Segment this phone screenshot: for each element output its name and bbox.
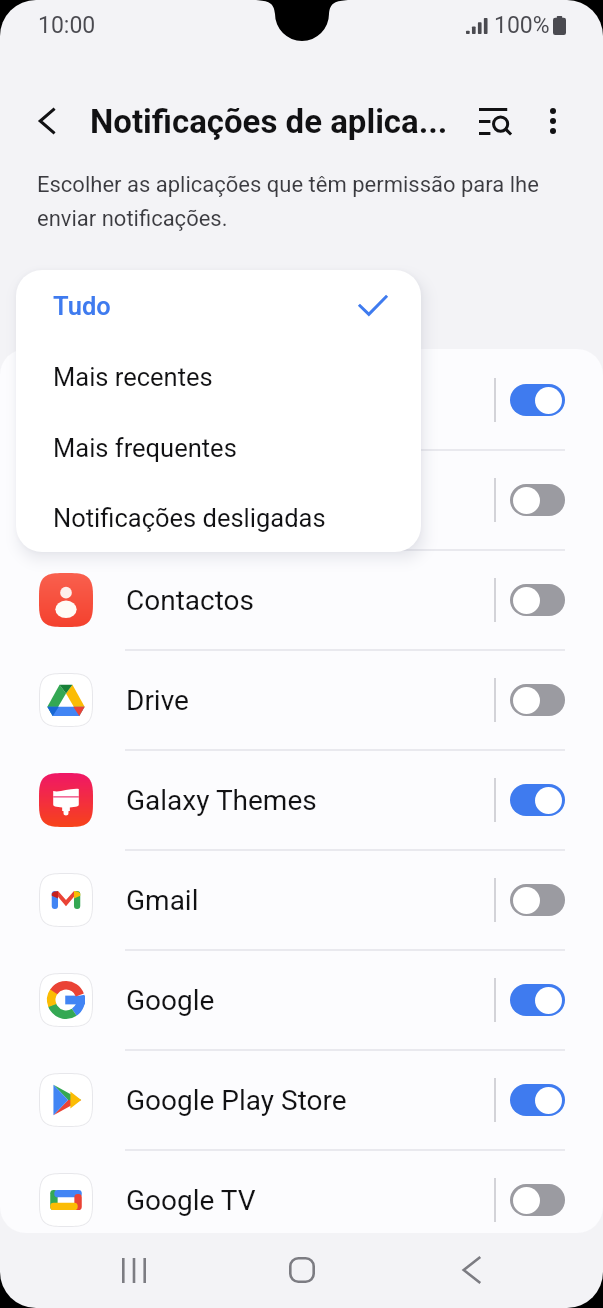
staticText: Notificações desligadas [53,503,421,533]
button[interactable]: Google [0,950,603,1050]
staticText: Google [126,984,494,1017]
button[interactable]: Toggle notifications [510,684,565,716]
staticText: 10:00 [38,12,96,39]
staticText: Escolher as aplicações que têm permissão… [37,172,558,231]
button[interactable]: Toggle notifications [510,984,565,1016]
staticText: Gmail [126,884,494,917]
button[interactable]: Drive [0,650,603,750]
button[interactable]: Contactos [0,550,603,650]
button[interactable]: Chrome [0,450,603,550]
button[interactable]: Mais frequentes [16,412,421,483]
button[interactable]: Notificações desligadas [16,483,421,552]
button[interactable]: Recents [94,1232,174,1308]
button[interactable]: Toggle notifications [510,1184,565,1216]
staticText: Contactos [126,584,494,617]
button[interactable]: Home [262,1232,342,1308]
staticText: Galaxy Themes [126,784,494,817]
staticText: Google TV [126,1184,494,1217]
staticText: Notificações de aplica... [90,102,448,141]
button[interactable]: Toggle notifications [510,1084,565,1116]
button[interactable]: Calendário [0,350,603,450]
button[interactable]: Toggle notifications [510,584,565,616]
button[interactable]: Toggle notifications [510,884,565,916]
button[interactable]: Toggle notifications [510,384,565,416]
staticText: Google Play Store [126,1084,494,1117]
staticText: Chrome [126,484,494,517]
staticText: Drive [126,684,494,717]
button[interactable]: Back [432,1232,512,1308]
staticText: 100% [494,12,550,39]
button[interactable]: Google TV [0,1150,603,1233]
button[interactable]: Mais recentes [16,341,421,412]
button[interactable]: Google Play Store [0,1050,603,1150]
staticText: Mais frequentes [53,433,421,463]
staticText: Tudo [53,291,357,321]
button[interactable]: Back [21,94,75,148]
button[interactable]: Tudo [16,270,421,341]
button[interactable]: Toggle notifications [510,784,565,816]
button[interactable]: Galaxy Themes [0,750,603,850]
staticText: Mais recentes [53,362,421,392]
staticText: Calendário [126,384,494,417]
button[interactable]: More options [525,93,581,149]
button[interactable]: Search [467,93,523,149]
button[interactable]: Toggle notifications [510,484,565,516]
button[interactable]: Gmail [0,850,603,950]
